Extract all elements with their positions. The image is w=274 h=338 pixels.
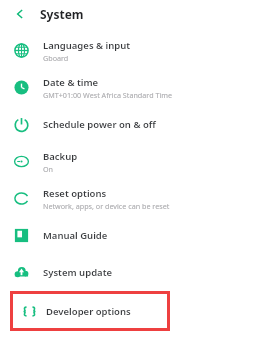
other: Date and time [0,69,43,106]
staticText: GMT+01:00 West Africa Standard Time [43,90,173,100]
other: Languages and input [0,32,43,69]
other: Schedule power on and off [0,106,43,143]
other: Developer options icon [13,294,46,328]
button[interactable]: Reset options [0,180,274,217]
button[interactable]: Developer options icon [13,294,167,328]
button[interactable]: Date and time [0,69,274,106]
staticText: Network, apps, or device can be reset [43,201,170,211]
staticText: System update [43,266,113,279]
button[interactable]: System update [0,254,274,291]
other: Reset options [0,180,43,217]
staticText: Reset options [43,187,107,200]
staticText: Languages & input [43,39,131,52]
staticText: Gboard [43,53,69,63]
staticText: Date & time [43,76,99,89]
staticText: Manual Guide [43,229,108,242]
button[interactable]: Manual Guide [0,217,274,254]
other: Backup [0,143,43,180]
button[interactable]: Languages and input [0,32,274,69]
button[interactable]: Schedule power on and off [0,106,274,143]
staticText: Backup [43,150,78,163]
other: System update [0,254,43,291]
staticText: On [43,164,54,174]
button[interactable]: Back [0,0,40,28]
other: Manual Guide [0,217,43,254]
button[interactable]: Backup [0,143,274,180]
staticText: System [40,6,84,22]
staticText: Developer options [46,305,131,318]
staticText: Schedule power on & off [43,118,156,131]
